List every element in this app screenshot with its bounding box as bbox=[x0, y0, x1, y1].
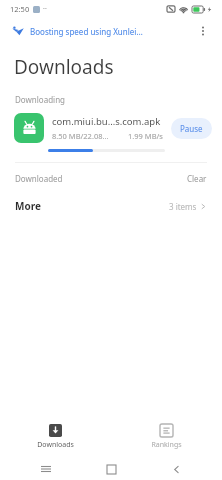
staticText: Boosting speed using Xunlei… bbox=[30, 26, 143, 37]
staticText: com.miui.bu…s.com.apk bbox=[52, 115, 161, 128]
staticText: 1.99 MB/s bbox=[128, 131, 163, 141]
button[interactable]: Downloads bbox=[0, 416, 111, 458]
button[interactable]: Home bbox=[100, 458, 122, 480]
button[interactable]: More bbox=[0, 196, 222, 216]
staticText: 3 items bbox=[169, 201, 197, 212]
staticText: Pause bbox=[180, 123, 203, 134]
staticText: More bbox=[15, 199, 41, 213]
staticText: 8.50 MB/22.08… bbox=[52, 131, 109, 141]
staticText: Clear bbox=[187, 173, 207, 184]
button[interactable]: Back bbox=[165, 458, 187, 480]
button[interactable]: More options bbox=[192, 20, 214, 42]
staticText: Downloaded bbox=[15, 173, 63, 184]
staticText: Downloading bbox=[15, 94, 65, 105]
staticText: Rankings bbox=[151, 440, 182, 450]
button[interactable]: Pause bbox=[171, 118, 212, 139]
button[interactable]: Clear bbox=[187, 173, 207, 184]
button[interactable]: Boosting speed using Xunlei… bbox=[30, 26, 192, 37]
staticText: 12:50 bbox=[10, 4, 30, 14]
button[interactable]: Rankings bbox=[111, 416, 222, 458]
button[interactable]: com.miui.bu…s.com.apk bbox=[0, 113, 222, 152]
staticText: Downloads bbox=[37, 440, 74, 450]
staticText: ·· bbox=[43, 4, 47, 14]
button[interactable]: Recents bbox=[35, 458, 57, 480]
staticText: Downloads bbox=[14, 54, 114, 80]
